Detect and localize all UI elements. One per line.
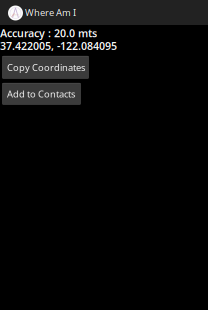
staticText: Accuracy : 20.0 mts	[0, 26, 97, 40]
staticText: Add to Contacts	[7, 88, 75, 100]
staticText: Copy Coordinates	[7, 61, 85, 74]
staticText: 37.422005, -122.084095	[0, 39, 117, 53]
button[interactable]: Where Am I	[0, 0, 76, 25]
button[interactable]: Copy Coordinates	[2, 56, 89, 79]
staticText: Where Am I	[25, 6, 76, 19]
button[interactable]: Add to Contacts	[2, 83, 81, 105]
